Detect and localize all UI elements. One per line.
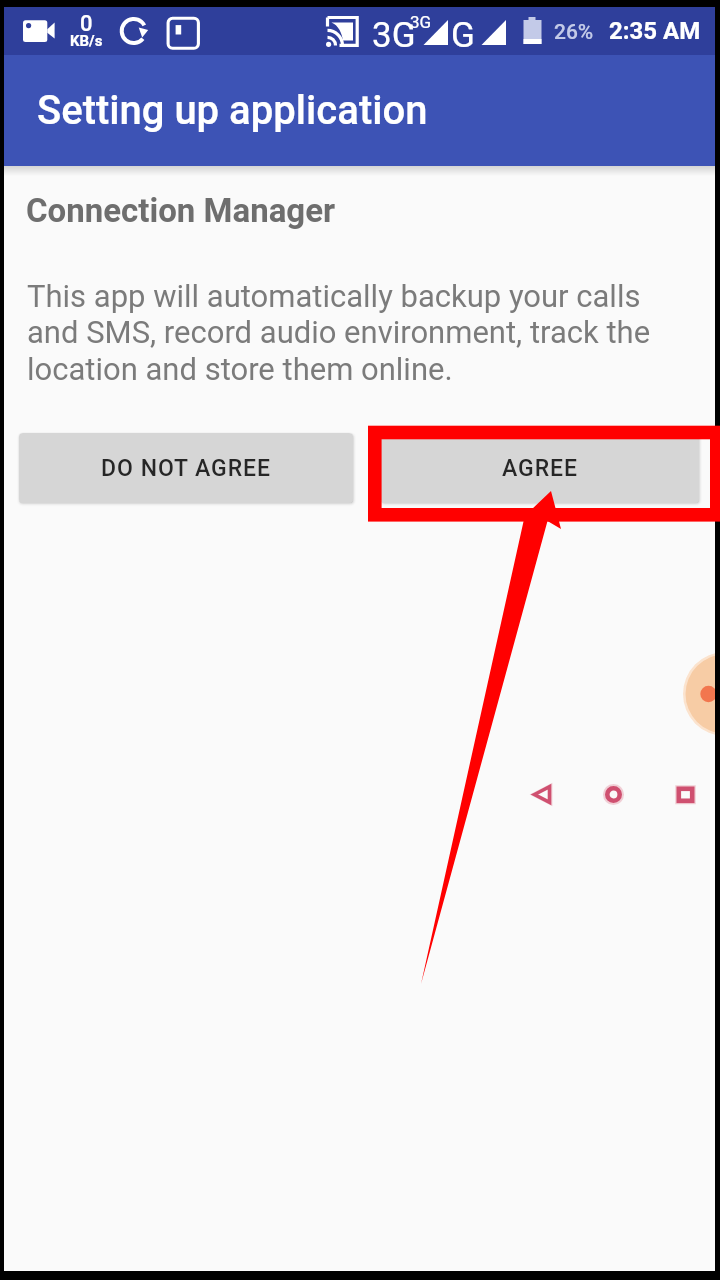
staticText: AGREE xyxy=(502,455,579,482)
staticText: G xyxy=(451,15,475,56)
staticText: 26% xyxy=(554,20,594,45)
staticText: 0 xyxy=(80,11,93,37)
staticText: 3G xyxy=(372,15,416,56)
staticText: This app will automatically backup your … xyxy=(27,278,657,387)
staticText: DO NOT AGREE xyxy=(101,455,272,482)
staticText: 2:35 AM xyxy=(609,17,701,45)
button[interactable]: Assistive touch xyxy=(683,654,715,734)
button[interactable]: AGREE xyxy=(381,433,699,503)
button[interactable]: Home xyxy=(592,769,638,815)
staticText: Setting up application xyxy=(37,87,428,134)
staticText: Connection Manager xyxy=(26,191,336,230)
button[interactable]: DO NOT AGREE xyxy=(19,433,353,503)
button[interactable]: Setting up application xyxy=(4,55,715,166)
button[interactable]: Recent apps xyxy=(664,769,710,815)
staticText: KB/s xyxy=(70,32,103,50)
staticText: 3G xyxy=(410,12,432,32)
button[interactable]: Back xyxy=(520,769,566,815)
